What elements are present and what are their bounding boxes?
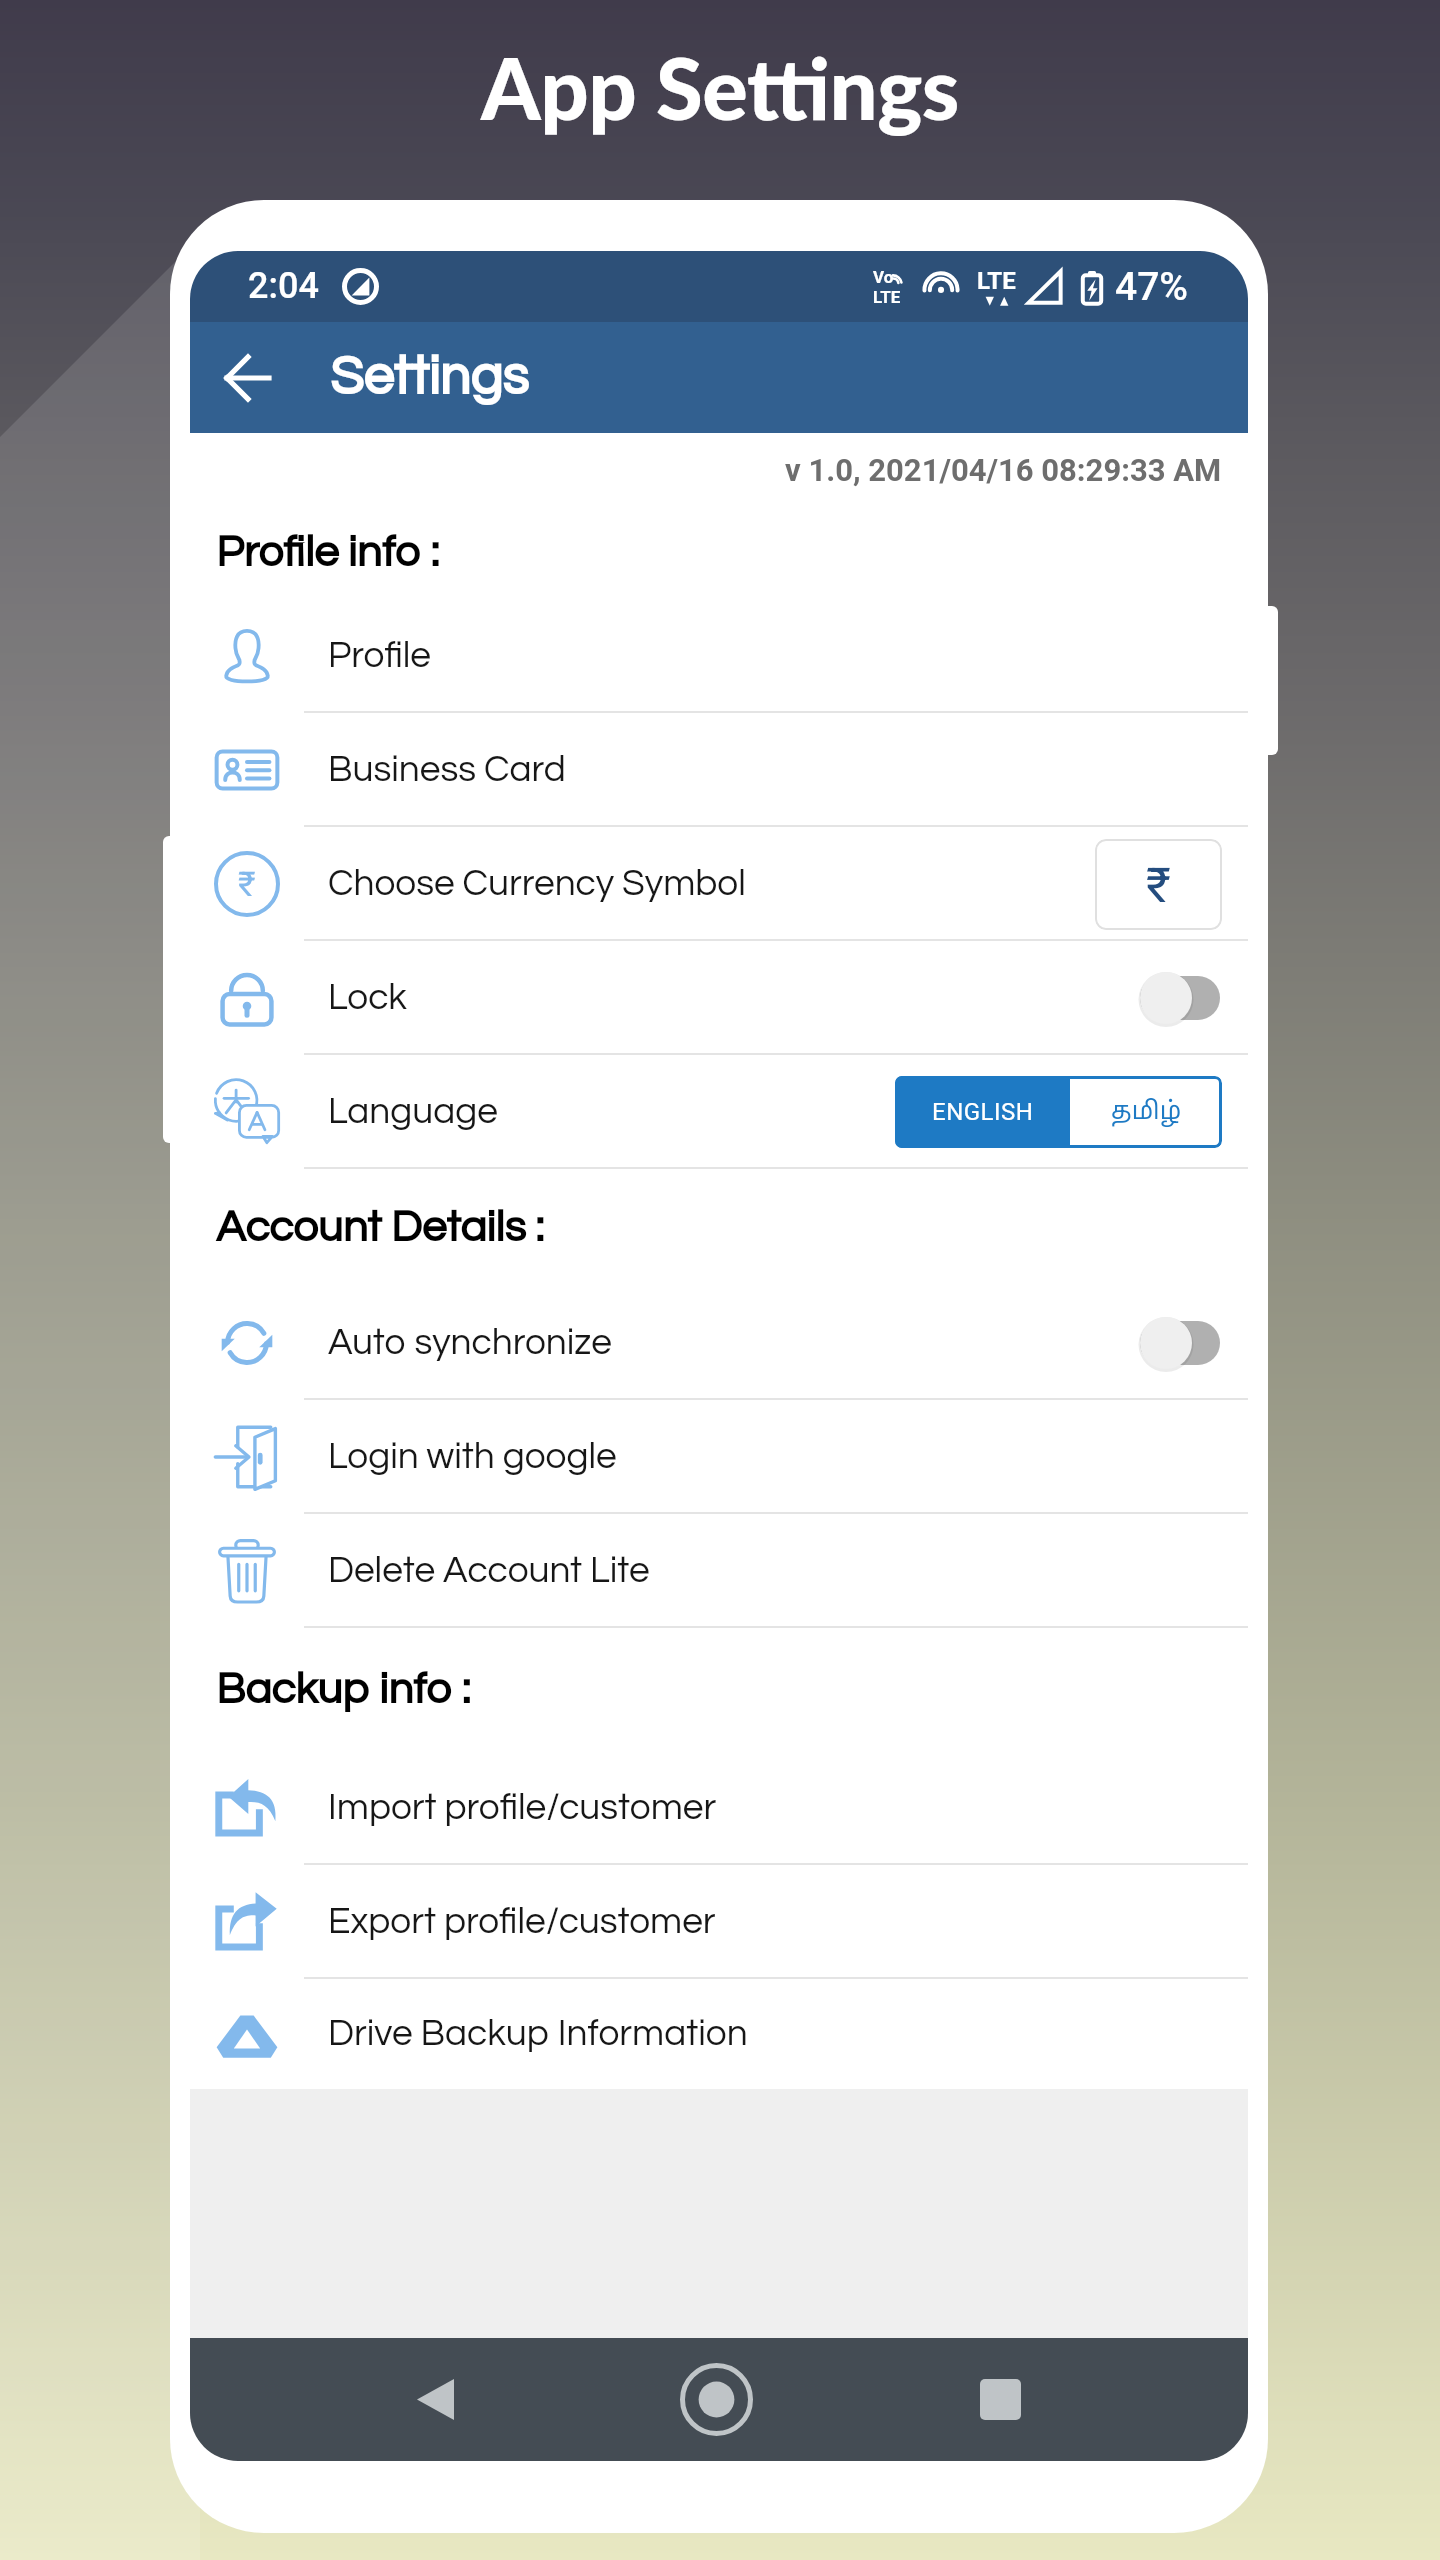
button[interactable]: Language <box>190 1055 1248 1169</box>
staticText: Lock <box>328 979 407 1017</box>
staticText: Export profile/customer <box>328 1903 716 1941</box>
staticText: Import profile/customer <box>328 1789 717 1827</box>
staticText: Language <box>328 1093 498 1131</box>
staticText: Vo <box>873 267 894 287</box>
staticText: Drive Backup Information <box>328 2015 748 2053</box>
staticText: LTE <box>977 267 1016 295</box>
staticText: 47% <box>1115 264 1189 310</box>
staticText: Auto synchronize <box>328 1324 612 1362</box>
button[interactable]: Home <box>671 2338 762 2461</box>
button[interactable]: Import profile/customer <box>190 1751 1248 1865</box>
button[interactable]: Toggle <box>1136 1315 1222 1371</box>
staticText: Backup info : <box>216 1667 471 1712</box>
button[interactable]: Auto synchronize <box>190 1286 1248 1400</box>
button[interactable]: ENGLISH <box>895 1076 1070 1148</box>
staticText: App Settings <box>481 36 959 138</box>
staticText: ₹ <box>238 864 256 904</box>
button[interactable]: Export profile/customer <box>190 1865 1248 1979</box>
staticText: 2:04 <box>248 265 319 307</box>
staticText: Delete Account Lite <box>328 1552 650 1590</box>
staticText: Business Card <box>328 751 566 789</box>
button[interactable]: Toggle <box>1136 970 1222 1026</box>
button[interactable]: தமிழ் <box>1070 1076 1222 1148</box>
staticText: v 1.0, 2021/04/16 08:29:33 AM <box>785 452 1222 488</box>
button[interactable]: Recent apps <box>955 2338 1045 2461</box>
button[interactable]: Profile <box>190 599 1248 713</box>
staticText: LTE <box>873 287 901 307</box>
button[interactable]: Lock <box>190 941 1248 1055</box>
button[interactable]: Currency symbol <box>1095 839 1222 930</box>
button[interactable]: ₹ <box>190 827 1248 941</box>
button[interactable]: Delete Account Lite <box>190 1514 1248 1628</box>
staticText: Account Details : <box>216 1205 544 1250</box>
staticText: ENGLISH <box>932 1098 1034 1126</box>
button[interactable]: Login with google <box>190 1400 1248 1514</box>
staticText: Choose Currency Symbol <box>328 865 746 903</box>
staticText: தமிழ் <box>1111 1097 1182 1128</box>
staticText: ₹ <box>1146 857 1171 913</box>
staticText: Login with google <box>328 1438 617 1476</box>
button[interactable]: Business Card <box>190 713 1248 827</box>
staticText: Profile <box>328 637 431 675</box>
staticText: Settings <box>330 350 529 406</box>
staticText: Profile info : <box>216 530 440 575</box>
button[interactable]: Back <box>390 2338 480 2461</box>
button[interactable]: Drive Backup Information <box>190 1979 1248 2089</box>
button[interactable]: Back <box>198 329 296 427</box>
